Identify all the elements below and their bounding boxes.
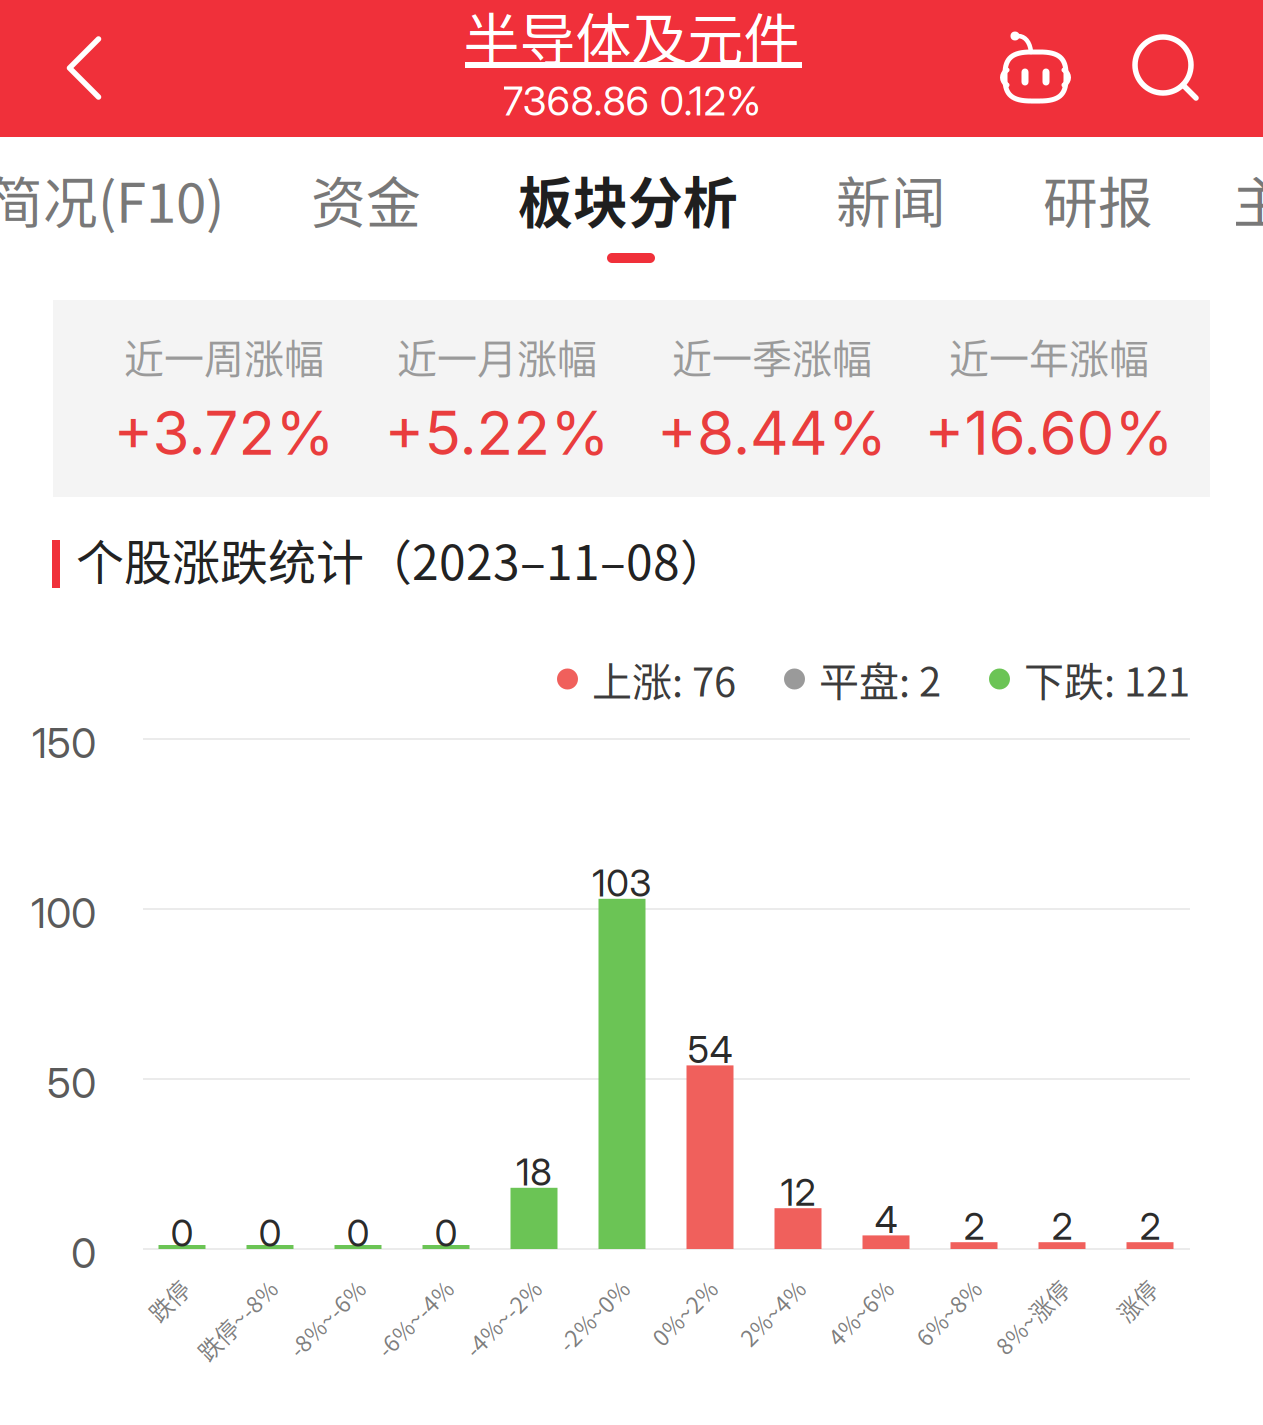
staticText: 资金 (311, 159, 421, 239)
staticText: 新闻 (836, 159, 946, 239)
staticText: 0 (258, 1210, 281, 1256)
staticText: +8.44% (657, 397, 887, 469)
button[interactable]: 新闻 (810, 160, 972, 290)
staticText: 0%~2% (617, 1274, 698, 1306)
button[interactable]: 板块分析 (491, 160, 765, 290)
staticText: 4%~6% (793, 1274, 874, 1306)
staticText: 7368.86 0.12% (502, 77, 760, 125)
staticText: 0 (346, 1210, 369, 1256)
staticText: 跌停 (124, 1274, 170, 1306)
staticText: 半导体及元件 (463, 0, 799, 76)
staticText: 6%~8% (881, 1274, 962, 1306)
staticText: 研报 (1043, 159, 1153, 239)
staticText: 个股涨跌统计（2023–11–08） (76, 524, 728, 594)
staticText: 50 (47, 1058, 96, 1108)
staticText: 近一年涨幅 (949, 327, 1149, 385)
staticText: 涨停 (1092, 1274, 1138, 1306)
staticText: 2%~4% (705, 1274, 786, 1306)
staticText: 2 (1051, 1204, 1072, 1249)
staticText: 跌停~-8% (157, 1274, 258, 1306)
staticText: -8%~-6% (249, 1274, 346, 1306)
staticText: +16.60% (924, 397, 1173, 469)
staticText: 下跌: 121 (1024, 650, 1190, 708)
staticText: 0 (434, 1210, 457, 1256)
button[interactable]: Back (0, 0, 1263, 137)
staticText: 150 (32, 718, 96, 768)
staticText: 近一月涨幅 (397, 327, 597, 385)
staticText: 103 (592, 860, 652, 905)
staticText: 54 (687, 1027, 732, 1072)
staticText: 18 (516, 1149, 552, 1194)
staticText: +5.22% (384, 397, 609, 469)
button[interactable]: 研报 (1015, 160, 1181, 290)
staticText: 8%~涨停 (957, 1274, 1050, 1306)
staticText: 近一季涨幅 (672, 327, 872, 385)
staticText: 0 (170, 1210, 193, 1256)
staticText: 板块分析 (518, 159, 738, 239)
staticText: 平盘: 2 (819, 650, 941, 708)
staticText: 0 (71, 1228, 96, 1278)
button[interactable]: 主 (1206, 160, 1263, 290)
staticText: -2%~0% (521, 1274, 610, 1306)
staticText: 100 (31, 888, 96, 938)
staticText: 2 (963, 1204, 984, 1249)
button[interactable]: 简况(F10) (0, 160, 241, 290)
button[interactable]: 资金 (285, 160, 447, 290)
button[interactable]: Search (0, 0, 1263, 137)
staticText: 简况(F10) (0, 159, 224, 239)
staticText: 2 (1139, 1204, 1160, 1249)
staticText: 近一周涨幅 (124, 327, 324, 385)
staticText: 上涨: 76 (592, 650, 736, 708)
staticText: -6%~-4% (337, 1274, 434, 1306)
staticText: 主 (1232, 159, 1263, 239)
staticText: 4 (874, 1197, 897, 1242)
staticText: +3.72% (113, 397, 334, 469)
button[interactable]: AI assistant (0, 0, 1263, 137)
staticText: 12 (780, 1170, 815, 1215)
staticText: -4%~-2% (425, 1274, 522, 1306)
